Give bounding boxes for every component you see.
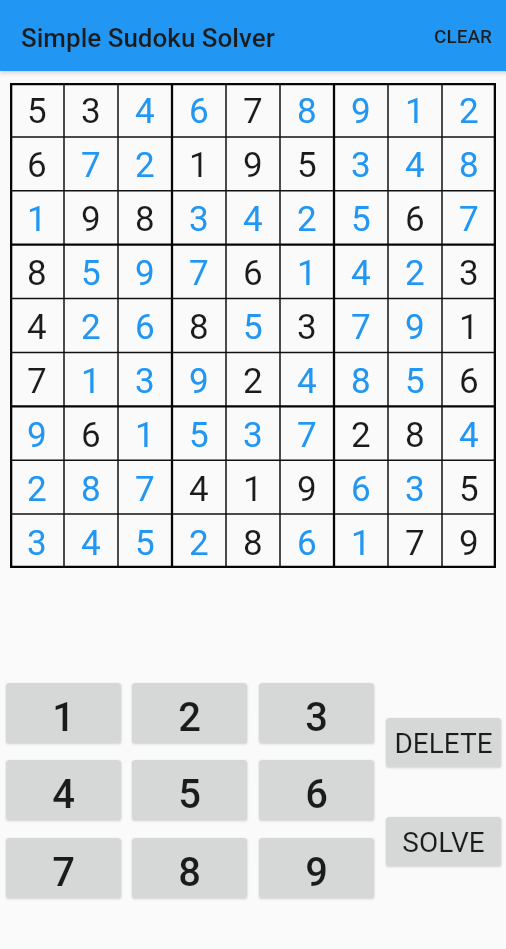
staticText: CLEAR — [434, 25, 492, 47]
button[interactable]: Cell row 8 column 5, 1 — [226, 460, 280, 514]
button[interactable]: 4 — [6, 760, 121, 820]
button[interactable]: Cell row 7 column 7, 2 — [334, 406, 388, 460]
button[interactable]: Cell row 8 column 7, 6 — [334, 460, 388, 514]
button[interactable]: 8 — [132, 838, 247, 898]
button[interactable]: Cell row 9 column 6, 6 — [280, 514, 334, 568]
button[interactable]: Cell row 7 column 2, 6 — [64, 406, 118, 460]
button[interactable]: Cell row 3 column 6, 2 — [280, 190, 334, 244]
button[interactable]: Cell row 4 column 3, 9 — [118, 244, 172, 298]
staticText: 5 — [27, 91, 47, 132]
button[interactable]: DELETE — [386, 718, 501, 767]
button[interactable]: Cell row 9 column 1, 3 — [10, 514, 64, 568]
button[interactable]: Cell row 8 column 2, 8 — [64, 460, 118, 514]
button[interactable]: Cell row 5 column 1, 4 — [10, 298, 64, 352]
button[interactable]: Cell row 2 column 9, 8 — [442, 136, 496, 190]
button[interactable]: Cell row 9 column 7, 1 — [334, 514, 388, 568]
button[interactable]: 5 — [132, 760, 247, 820]
button[interactable]: Cell row 8 column 3, 7 — [118, 460, 172, 514]
button[interactable]: CLEAR — [420, 0, 506, 71]
staticText: 9 — [135, 253, 155, 294]
button[interactable]: Cell row 1 column 7, 9 — [334, 83, 388, 136]
staticText: 4 — [135, 91, 155, 132]
button[interactable]: Cell row 5 column 7, 7 — [334, 298, 388, 352]
button[interactable]: Cell row 1 column 4, 6 — [172, 83, 226, 136]
button[interactable]: 3 — [259, 683, 374, 743]
button[interactable]: Cell row 6 column 9, 6 — [442, 352, 496, 406]
button[interactable]: Cell row 7 column 5, 3 — [226, 406, 280, 460]
button[interactable]: 7 — [6, 838, 121, 898]
button[interactable]: Cell row 1 column 9, 2 — [442, 83, 496, 136]
button[interactable]: Cell row 2 column 5, 9 — [226, 136, 280, 190]
button[interactable]: 1 — [6, 683, 121, 743]
button[interactable]: Cell row 9 column 3, 5 — [118, 514, 172, 568]
button[interactable]: Cell row 5 column 6, 3 — [280, 298, 334, 352]
button[interactable]: Cell row 7 column 9, 4 — [442, 406, 496, 460]
button[interactable]: Cell row 3 column 8, 6 — [388, 190, 442, 244]
button[interactable]: Cell row 2 column 8, 4 — [388, 136, 442, 190]
button[interactable]: Cell row 5 column 2, 2 — [64, 298, 118, 352]
button[interactable]: Cell row 1 column 3, 4 — [118, 83, 172, 136]
button[interactable]: 9 — [259, 838, 374, 898]
button[interactable]: Cell row 6 column 8, 5 — [388, 352, 442, 406]
button[interactable]: Cell row 7 column 4, 5 — [172, 406, 226, 460]
button[interactable]: SOLVE — [386, 817, 501, 866]
button[interactable]: Cell row 9 column 4, 2 — [172, 514, 226, 568]
button[interactable]: Cell row 6 column 4, 9 — [172, 352, 226, 406]
button[interactable]: Cell row 6 column 6, 4 — [280, 352, 334, 406]
button[interactable]: Cell row 7 column 8, 8 — [388, 406, 442, 460]
button[interactable]: Cell row 6 column 7, 8 — [334, 352, 388, 406]
button[interactable]: Cell row 4 column 2, 5 — [64, 244, 118, 298]
button[interactable]: Cell row 6 column 2, 1 — [64, 352, 118, 406]
button[interactable]: Cell row 1 column 5, 7 — [226, 83, 280, 136]
button[interactable]: Cell row 5 column 9, 1 — [442, 298, 496, 352]
button[interactable]: Cell row 4 column 6, 1 — [280, 244, 334, 298]
button[interactable]: Cell row 8 column 8, 3 — [388, 460, 442, 514]
button[interactable]: Cell row 3 column 7, 5 — [334, 190, 388, 244]
button[interactable]: Cell row 9 column 9, 9 — [442, 514, 496, 568]
button[interactable]: Cell row 4 column 5, 6 — [226, 244, 280, 298]
staticText: 1 — [405, 91, 425, 132]
button[interactable]: Cell row 2 column 2, 7 — [64, 136, 118, 190]
staticText: 9 — [351, 91, 371, 132]
button[interactable]: Cell row 9 column 8, 7 — [388, 514, 442, 568]
button[interactable]: Cell row 9 column 5, 8 — [226, 514, 280, 568]
button[interactable]: Cell row 6 column 1, 7 — [10, 352, 64, 406]
button[interactable]: 6 — [259, 760, 374, 820]
button[interactable]: Cell row 1 column 6, 8 — [280, 83, 334, 136]
button[interactable]: Cell row 8 column 6, 9 — [280, 460, 334, 514]
button[interactable]: Cell row 9 column 2, 4 — [64, 514, 118, 568]
button[interactable]: Cell row 6 column 3, 3 — [118, 352, 172, 406]
button[interactable]: Cell row 8 column 1, 2 — [10, 460, 64, 514]
staticText: 3 — [27, 523, 47, 564]
button[interactable]: 2 — [132, 683, 247, 743]
button[interactable]: Cell row 1 column 1, 5 — [10, 83, 64, 136]
button[interactable]: Cell row 5 column 8, 9 — [388, 298, 442, 352]
button[interactable]: Cell row 4 column 4, 7 — [172, 244, 226, 298]
button[interactable]: Cell row 4 column 8, 2 — [388, 244, 442, 298]
button[interactable]: Cell row 5 column 3, 6 — [118, 298, 172, 352]
button[interactable]: Cell row 2 column 3, 2 — [118, 136, 172, 190]
button[interactable]: Cell row 2 column 1, 6 — [10, 136, 64, 190]
button[interactable]: Cell row 1 column 8, 1 — [388, 83, 442, 136]
button[interactable]: Cell row 2 column 6, 5 — [280, 136, 334, 190]
button[interactable]: Cell row 4 column 1, 8 — [10, 244, 64, 298]
button[interactable]: Cell row 7 column 1, 9 — [10, 406, 64, 460]
button[interactable]: Cell row 2 column 7, 3 — [334, 136, 388, 190]
button[interactable]: Cell row 8 column 4, 4 — [172, 460, 226, 514]
button[interactable]: Cell row 7 column 6, 7 — [280, 406, 334, 460]
button[interactable]: Cell row 4 column 7, 4 — [334, 244, 388, 298]
button[interactable]: Cell row 2 column 4, 1 — [172, 136, 226, 190]
button[interactable]: Cell row 5 column 5, 5 — [226, 298, 280, 352]
button[interactable]: Cell row 3 column 4, 3 — [172, 190, 226, 244]
button[interactable]: Cell row 3 column 2, 9 — [64, 190, 118, 244]
button[interactable]: Cell row 6 column 5, 2 — [226, 352, 280, 406]
button[interactable]: Cell row 1 column 2, 3 — [64, 83, 118, 136]
button[interactable]: Cell row 3 column 5, 4 — [226, 190, 280, 244]
button[interactable]: Cell row 4 column 9, 3 — [442, 244, 496, 298]
button[interactable]: Cell row 3 column 9, 7 — [442, 190, 496, 244]
button[interactable]: Cell row 3 column 1, 1 — [10, 190, 64, 244]
button[interactable]: Cell row 7 column 3, 1 — [118, 406, 172, 460]
button[interactable]: Cell row 3 column 3, 8 — [118, 190, 172, 244]
button[interactable]: Cell row 8 column 9, 5 — [442, 460, 496, 514]
button[interactable]: Cell row 5 column 4, 8 — [172, 298, 226, 352]
